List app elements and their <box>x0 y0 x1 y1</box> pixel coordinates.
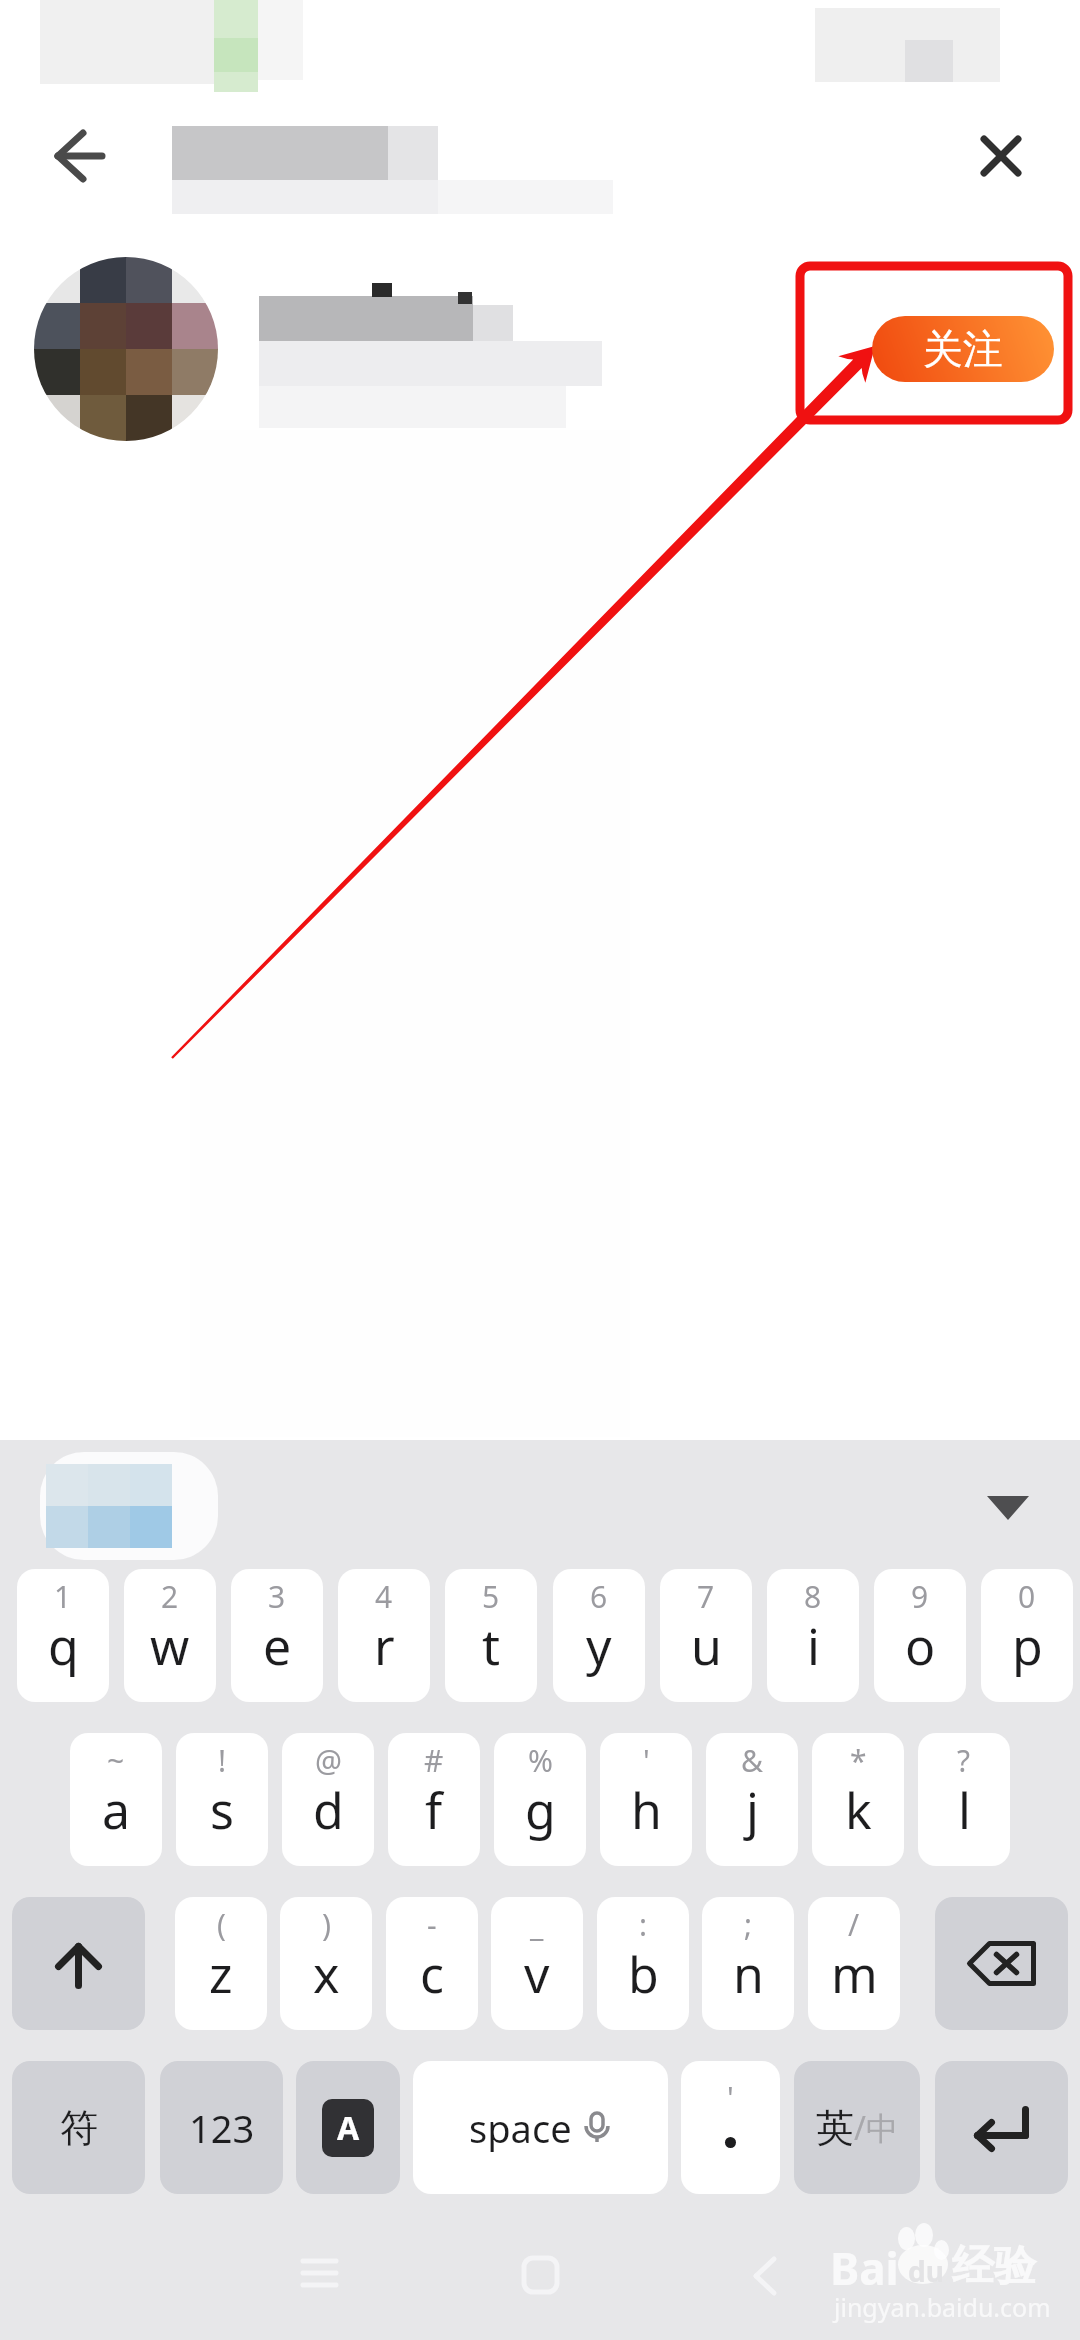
staticText: _ <box>530 1904 544 1945</box>
staticText: & <box>741 1740 763 1781</box>
button[interactable]: : <box>597 1897 689 2030</box>
staticText: Bai <box>830 2238 899 2298</box>
button[interactable]: 8 <box>767 1569 859 1702</box>
staticText: / <box>848 1904 860 1945</box>
staticText: 7 <box>697 1576 715 1617</box>
button[interactable]: 3 <box>231 1569 323 1702</box>
staticText: 4 <box>375 1576 393 1617</box>
staticText: o <box>905 1612 936 1680</box>
staticText: e <box>263 1612 292 1680</box>
staticText: d <box>313 1776 344 1844</box>
button[interactable] <box>12 1897 145 2030</box>
staticText: l <box>958 1776 971 1844</box>
staticText: k <box>845 1776 872 1844</box>
staticText: z <box>209 1940 233 2008</box>
staticText: ? <box>957 1740 971 1781</box>
staticText: w <box>150 1612 190 1680</box>
button[interactable]: ! <box>176 1733 268 1866</box>
button[interactable]: 6 <box>553 1569 645 1702</box>
button[interactable]: ' <box>681 2061 780 2194</box>
staticText: ' <box>643 1740 650 1781</box>
staticText: j <box>746 1776 759 1844</box>
button[interactable]: 2 <box>124 1569 216 1702</box>
staticText: 1 <box>54 1576 72 1617</box>
staticText: 2 <box>161 1576 179 1617</box>
button[interactable]: 1 <box>17 1569 109 1702</box>
button[interactable]: # <box>388 1733 480 1866</box>
staticText: n <box>733 1940 764 2008</box>
staticText: du <box>908 2252 944 2290</box>
button[interactable]: / <box>808 1897 900 2030</box>
button[interactable]: * <box>812 1733 904 1866</box>
button[interactable] <box>962 118 1040 194</box>
button[interactable]: 9 <box>874 1569 966 1702</box>
staticText: space <box>469 2102 572 2154</box>
staticText: 6 <box>590 1576 608 1617</box>
staticText: p <box>1012 1612 1043 1680</box>
button[interactable]: 0 <box>981 1569 1073 1702</box>
staticText: i <box>807 1612 820 1680</box>
staticText: /中 <box>854 2106 898 2150</box>
staticText: : <box>639 1904 648 1945</box>
button[interactable]: ) <box>280 1897 372 2030</box>
button[interactable] <box>150 112 850 217</box>
staticText: A <box>337 2106 360 2150</box>
staticText: ! <box>218 1740 227 1781</box>
button[interactable]: A <box>296 2061 400 2194</box>
staticText: u <box>691 1612 722 1680</box>
staticText: @ <box>315 1740 342 1781</box>
button[interactable]: 关注 <box>872 316 1054 382</box>
button[interactable] <box>34 257 218 441</box>
button[interactable] <box>498 2235 588 2315</box>
button[interactable]: 符 <box>12 2061 145 2194</box>
button[interactable]: 英 <box>794 2061 920 2194</box>
button[interactable]: ~ <box>70 1733 162 1866</box>
button[interactable] <box>935 1897 1068 2030</box>
button[interactable]: - <box>386 1897 478 2030</box>
button[interactable]: & <box>706 1733 798 1866</box>
button[interactable]: @ <box>282 1733 374 1866</box>
button[interactable]: 5 <box>445 1569 537 1702</box>
staticText: r <box>374 1612 395 1680</box>
staticText: ) <box>322 1904 331 1945</box>
button[interactable] <box>230 260 790 435</box>
staticText: y <box>586 1612 612 1680</box>
button[interactable]: 4 <box>338 1569 430 1702</box>
staticText: - <box>427 1904 437 1945</box>
button[interactable]: % <box>494 1733 586 1866</box>
staticText: v <box>524 1940 550 2008</box>
staticText: * <box>850 1740 867 1781</box>
staticText: 经验 <box>952 2240 1036 2293</box>
button[interactable]: _ <box>491 1897 583 2030</box>
button[interactable] <box>935 2061 1068 2194</box>
button[interactable] <box>40 118 120 194</box>
staticText: s <box>210 1776 234 1844</box>
button[interactable]: ( <box>175 1897 267 2030</box>
button[interactable]: ? <box>918 1733 1010 1866</box>
staticText: 3 <box>268 1576 286 1617</box>
staticText: x <box>313 1940 340 2008</box>
staticText: q <box>48 1612 79 1680</box>
staticText: a <box>102 1776 131 1844</box>
button[interactable]: 123 <box>160 2061 283 2194</box>
button[interactable]: 7 <box>660 1569 752 1702</box>
staticText: jingyan.baidu.com <box>834 2290 1051 2324</box>
staticText: 0 <box>1018 1576 1036 1617</box>
staticText: 英 <box>816 2104 854 2152</box>
staticText: ~ <box>107 1740 125 1781</box>
staticText: 9 <box>911 1576 929 1617</box>
staticText: 123 <box>189 2102 255 2154</box>
button[interactable]: ' <box>600 1733 692 1866</box>
staticText: f <box>425 1776 443 1844</box>
staticText: b <box>628 1940 659 2008</box>
staticText: 关注 <box>923 324 1003 374</box>
button[interactable] <box>275 2235 365 2315</box>
staticText: ( <box>217 1904 226 1945</box>
button[interactable]: space <box>413 2061 668 2194</box>
button[interactable] <box>40 1450 220 1562</box>
button[interactable] <box>968 1474 1048 1544</box>
button[interactable]: ; <box>702 1897 794 2030</box>
staticText: 符 <box>60 2104 98 2152</box>
staticText: t <box>482 1612 501 1680</box>
